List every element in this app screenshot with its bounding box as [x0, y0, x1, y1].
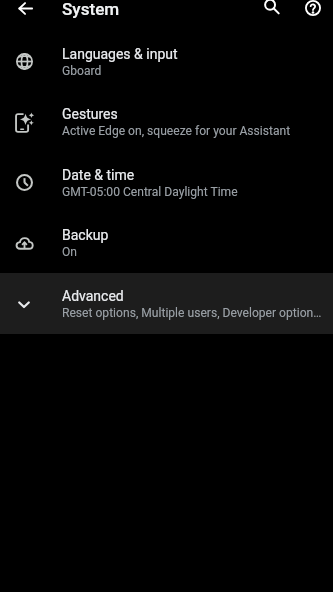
button[interactable]: Help [293, 0, 333, 28]
staticText: GMT-05:00 Central Daylight Time [62, 185, 238, 199]
staticText: Backup [62, 227, 109, 243]
button[interactable]: Languages & input [0, 31, 333, 92]
button[interactable]: Gestures [0, 92, 333, 152]
staticText: System [62, 0, 120, 19]
button[interactable]: Advanced [0, 273, 333, 334]
staticText: Active Edge on, squeeze for your Assista… [62, 124, 291, 138]
staticText: On [62, 245, 77, 259]
button[interactable]: Navigate up [5, 0, 45, 28]
staticText: Advanced [62, 288, 124, 304]
button[interactable]: Backup [0, 213, 333, 273]
button[interactable]: Search [252, 0, 292, 27]
staticText: Reset options, Multiple users, Developer… [62, 306, 322, 320]
staticText: Date & time [62, 167, 135, 183]
staticText: Languages & input [62, 46, 178, 62]
staticText: Gestures [62, 106, 118, 122]
staticText: Gboard [62, 64, 102, 78]
button[interactable]: Date & time [0, 152, 333, 213]
